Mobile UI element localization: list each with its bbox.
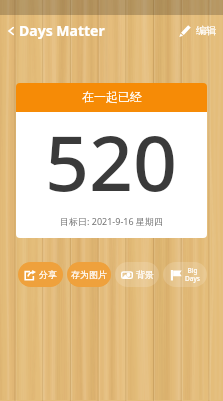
staticText: 分享 [39, 269, 57, 280]
staticText: 520 [45, 109, 178, 214]
staticText: 存为图片 [71, 269, 107, 280]
button[interactable]: 编辑 [173, 21, 223, 40]
staticText: Big Days [185, 266, 200, 283]
staticText: Days Matter [19, 21, 105, 40]
staticText: 在一起已经 [82, 89, 142, 104]
button[interactable]: Days Matter [0, 18, 111, 43]
button[interactable]: 背景 [115, 262, 159, 287]
button[interactable]: Big Days [163, 262, 207, 287]
button[interactable]: 存为图片 [67, 262, 111, 287]
staticText: 背景 [136, 269, 154, 280]
staticText: 编辑 [196, 24, 216, 37]
button[interactable]: 分享 [18, 262, 63, 287]
staticText: 目标日: 2021-9-16 星期四 [60, 215, 163, 227]
